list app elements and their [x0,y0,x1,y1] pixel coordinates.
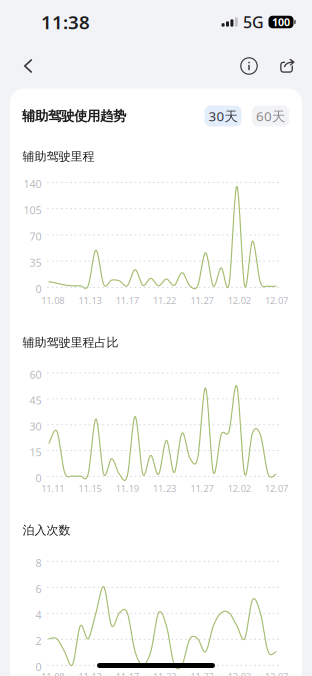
staticText: 0 [35,660,41,674]
staticText: 11.22 [153,294,176,307]
staticText: 140 [23,177,41,191]
staticText: 11.23 [153,482,176,495]
staticText: 0 [35,282,41,296]
staticText: 辅助驾驶里程占比 [22,335,118,350]
staticText: 12.02 [228,670,251,676]
staticText: 12.07 [265,294,288,307]
staticText: 11.22 [153,670,176,676]
staticText: 12.07 [265,670,288,676]
staticText: 5G [243,11,264,33]
staticText: 12.02 [228,482,251,495]
staticText: 8 [35,556,41,570]
staticText: 105 [23,203,41,217]
staticText: 15 [29,445,41,459]
button[interactable]: 30天 [204,105,241,126]
staticText: 11.08 [41,670,64,676]
staticText: 45 [29,393,41,407]
staticText: 11.11 [41,482,64,495]
staticText: 泊入次数 [22,523,70,537]
staticText: 60天 [256,107,285,125]
staticText: 11.17 [116,294,139,307]
staticText: 11.13 [78,670,101,676]
staticText: 100 [272,15,290,29]
staticText: 2 [35,634,41,648]
staticText: 11:38 [41,10,90,34]
staticText: 30 [29,419,41,433]
staticText: 70 [29,229,41,243]
staticText: 0 [35,471,41,485]
staticText: 辅助驾驶里程 [22,149,94,164]
staticText: 4 [35,608,41,622]
staticText: 11.27 [190,670,213,676]
staticText: 辅助驾驶使用趋势 [22,108,126,124]
staticText: 60 [29,367,41,382]
button[interactable]: Back [5,44,51,88]
staticText: 11.15 [78,482,101,495]
staticText: 35 [29,256,41,270]
staticText: 11.08 [41,294,64,307]
staticText: 12.07 [265,482,288,495]
staticText: 11.17 [116,670,139,676]
staticText: 6 [35,582,41,596]
staticText: 11.27 [190,482,213,495]
button[interactable]: Share [268,44,306,88]
staticText: 11.13 [78,294,101,307]
staticText: 30天 [208,107,237,125]
button[interactable]: 60天 [252,105,289,126]
staticText: 11.27 [190,294,213,307]
button[interactable]: Info [230,44,268,88]
staticText: 11.19 [116,482,139,495]
staticText: 12.02 [228,294,251,307]
